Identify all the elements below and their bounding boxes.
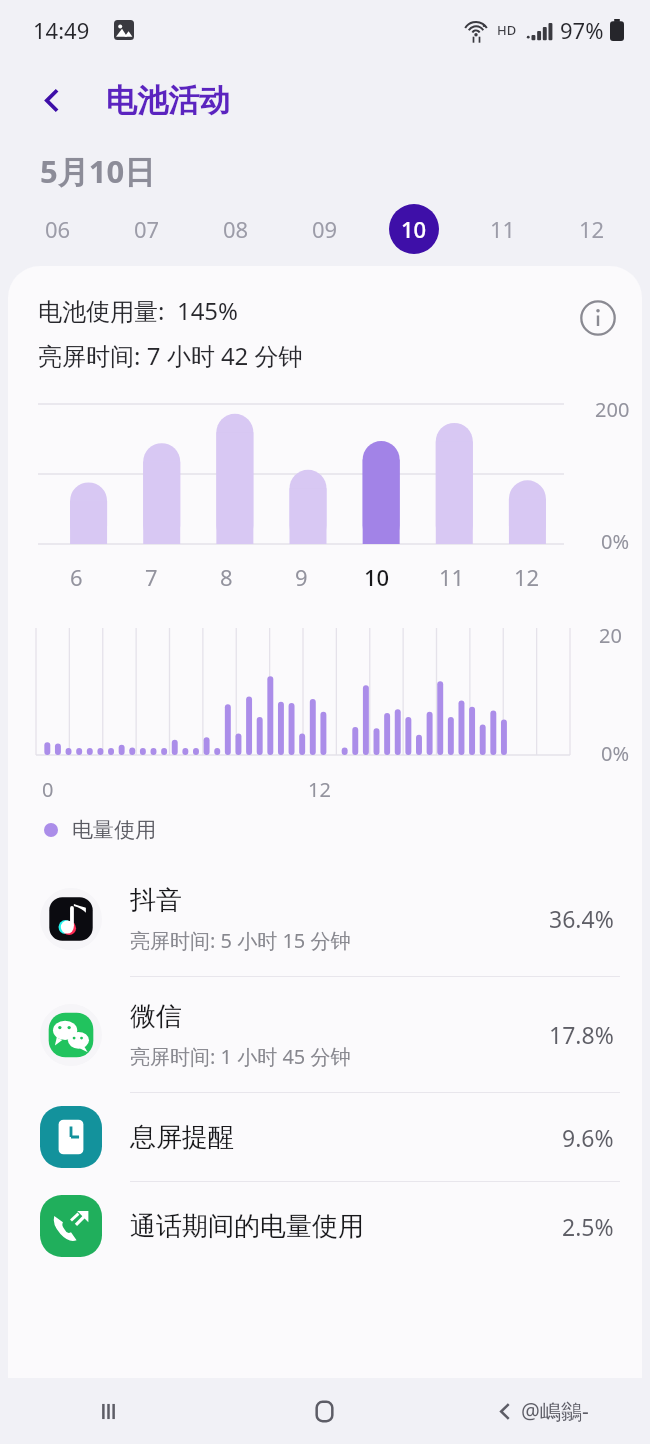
- staticText: 9: [295, 562, 308, 592]
- staticText: 5月10日: [40, 150, 156, 192]
- staticText: 息屏提醒: [130, 1121, 234, 1154]
- staticText: 8: [220, 562, 233, 592]
- staticText: 0%: [601, 528, 630, 555]
- staticText: 电量使用: [72, 817, 156, 843]
- staticText: 0%: [601, 740, 630, 767]
- button[interactable]: 07: [102, 192, 191, 266]
- staticText: 亮屏时间: 1 小时 45 分钟: [130, 1043, 351, 1070]
- staticText: 36.4%: [549, 903, 614, 934]
- staticText: 10: [364, 562, 390, 592]
- staticText: 11: [439, 562, 465, 592]
- staticText: 抖音: [130, 884, 182, 917]
- button[interactable]: Home: [216, 1378, 433, 1444]
- staticText: 9.6%: [562, 1122, 614, 1153]
- staticText: 2.5%: [562, 1211, 614, 1242]
- button[interactable]: Back: [24, 72, 80, 128]
- button[interactable]: 12: [547, 192, 636, 266]
- button[interactable]: 抖音: [8, 861, 642, 977]
- button[interactable]: Information: [574, 294, 622, 342]
- staticText: 6: [70, 562, 83, 592]
- staticText: 通话期间的电量使用: [130, 1210, 364, 1243]
- staticText: 200: [595, 396, 630, 423]
- staticText: 12: [579, 214, 605, 244]
- staticText: 08: [223, 214, 249, 244]
- staticText: 11: [490, 214, 516, 244]
- button[interactable]: 06: [14, 192, 102, 266]
- staticText: 06: [45, 214, 71, 244]
- staticText: 09: [312, 214, 338, 244]
- button[interactable]: 09: [280, 192, 369, 266]
- staticText: 12: [308, 776, 331, 803]
- button[interactable]: 微信: [8, 977, 642, 1093]
- staticText: 0: [42, 776, 54, 803]
- staticText: 电池使用量: 145%: [38, 294, 239, 327]
- staticText: 17.8%: [549, 1019, 614, 1050]
- staticText: 微信: [130, 1000, 182, 1033]
- staticText: @嶋鶲-: [521, 1397, 589, 1426]
- button[interactable]: Back: [433, 1378, 650, 1444]
- staticText: 97%: [560, 15, 604, 45]
- button[interactable]: 通话期间的电量使用: [8, 1182, 642, 1270]
- button[interactable]: 11: [458, 192, 547, 266]
- staticText: 亮屏时间: 5 小时 15 分钟: [130, 927, 351, 954]
- staticText: 7: [145, 562, 158, 592]
- staticText: 14:49: [33, 15, 90, 45]
- button[interactable]: 息屏提醒: [8, 1093, 642, 1182]
- staticText: HD: [497, 21, 517, 39]
- button[interactable]: 08: [191, 192, 280, 266]
- staticText: 12: [514, 562, 540, 592]
- button[interactable]: Recents: [0, 1378, 216, 1444]
- staticText: 亮屏时间: 7 小时 42 分钟: [38, 339, 303, 372]
- staticText: 20: [599, 622, 622, 649]
- staticText: 电池活动: [106, 81, 230, 120]
- staticText: 07: [134, 214, 160, 244]
- button[interactable]: 10: [369, 192, 458, 266]
- staticText: 10: [401, 214, 427, 244]
